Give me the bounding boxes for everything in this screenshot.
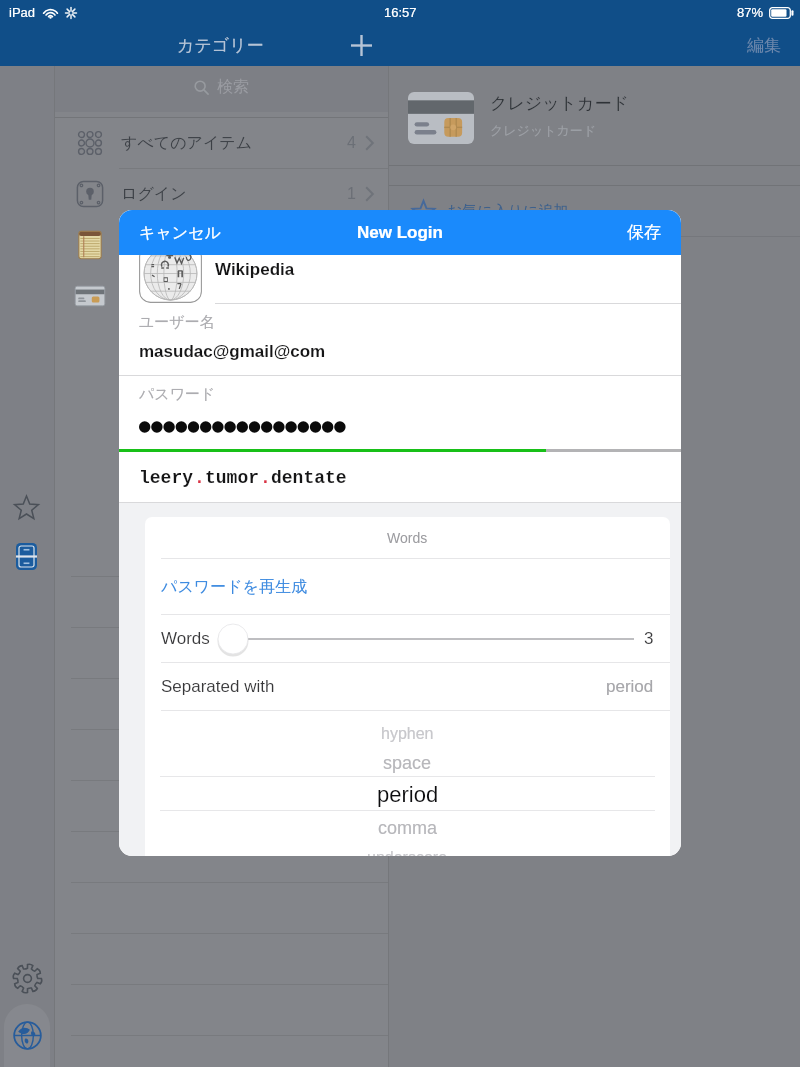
staticText: dentate (271, 468, 347, 488)
staticText: tumor (205, 468, 260, 488)
button[interactable]: Browser (4, 1004, 50, 1067)
button[interactable]: Separated with (145, 663, 670, 710)
staticText: masudac@gmail@com (139, 342, 326, 361)
staticText: クレジットカード (490, 122, 597, 138)
staticText: すべてのアイテム (121, 133, 252, 153)
button[interactable]: ログイン (55, 169, 388, 219)
button[interactable]: クレジットカード (55, 271, 388, 321)
staticText: . (194, 468, 205, 488)
staticText: . (260, 468, 271, 488)
staticText: クレジットカード (121, 286, 252, 306)
button[interactable]: クレジットカード (389, 66, 800, 165)
staticText: iPad (9, 5, 36, 20)
staticText: space (383, 753, 432, 773)
staticText: カテゴリー (177, 35, 264, 56)
staticText: セキュアメモ (121, 235, 220, 255)
staticText: 保存 (627, 222, 661, 243)
button[interactable]: 保存 (627, 210, 661, 255)
staticText: Separated with (161, 677, 275, 696)
staticText: leery (139, 468, 194, 488)
staticText: hyphen (381, 725, 434, 743)
button[interactable]: カテゴリー (54, 24, 387, 66)
staticText: underscore (367, 849, 448, 856)
button[interactable]: お気に入りに追加 (389, 186, 800, 236)
staticText: ログイン (121, 184, 187, 204)
staticText: period (606, 677, 654, 696)
staticText: パスワードを再生成 (161, 577, 307, 597)
staticText: 編集 (747, 35, 781, 56)
staticText: Words (387, 530, 428, 546)
staticText: 1 (347, 185, 356, 203)
button[interactable]: すべてのアイテム (55, 118, 388, 168)
staticText: お気に入りに追加 (447, 202, 569, 221)
staticText: period (377, 782, 439, 807)
staticText: comma (378, 818, 438, 838)
button[interactable]: セキュアメモ (55, 220, 388, 270)
button[interactable]: Settings (10, 961, 44, 995)
staticText: キャンセル (139, 223, 221, 243)
staticText: 検索 (217, 77, 249, 97)
staticText: 3 (644, 629, 654, 648)
staticText: ユーザー名 (139, 313, 215, 332)
staticText: Wikipedia (215, 260, 295, 279)
staticText: 87% (737, 5, 764, 20)
staticText: パスワード (139, 385, 216, 404)
staticText: 16:57 (384, 5, 417, 20)
button[interactable]: Categories (9, 539, 43, 573)
staticText: 4 (347, 134, 356, 152)
button[interactable]: Add item (341, 24, 381, 66)
button[interactable]: 編集 (747, 25, 781, 65)
staticText: Words (161, 629, 210, 648)
button[interactable]: Favorites (9, 490, 43, 524)
button[interactable]: パスワードを再生成 (145, 559, 670, 614)
staticText: New Login (357, 223, 443, 242)
staticText: クレジットカード (490, 93, 629, 114)
button[interactable]: キャンセル (139, 210, 221, 255)
